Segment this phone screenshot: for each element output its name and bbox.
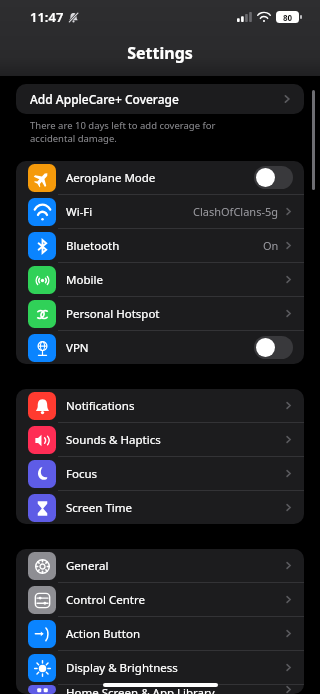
button[interactable]: Action Button [16,617,304,650]
staticText: 11:47 [30,8,64,26]
button[interactable]: Notifications [16,389,304,422]
button[interactable]: Add AppleCare+ Coverage [16,84,304,114]
button[interactable]: Sounds & Haptics [16,423,304,456]
staticText: Add AppleCare+ Coverage [30,91,179,107]
button[interactable]: Personal Hotspot [16,297,304,330]
staticText: Control Centre [66,592,145,608]
button[interactable]: Bluetooth [16,229,304,262]
staticText: General [66,558,109,574]
staticText: Bluetooth [66,238,120,254]
staticText: Action Button [66,626,140,642]
staticText: There are 10 days left to add coverage f… [30,119,216,145]
staticText: Wi-Fi [66,204,93,220]
staticText: 80 [283,12,293,23]
button[interactable]: Toggle, off [254,336,293,359]
button[interactable]: Control Centre [16,583,304,616]
button[interactable]: Home Screen & App Library [16,685,304,694]
button[interactable]: General [16,549,304,582]
staticText: Screen Time [66,500,133,516]
button[interactable]: Focus [16,457,304,490]
staticText: Personal Hotspot [66,306,160,322]
staticText: Aeroplane Mode [66,170,156,186]
staticText: Notifications [66,398,135,414]
button[interactable]: Toggle, off [254,166,293,189]
button[interactable]: VPN [16,331,304,364]
staticText: Sounds & Haptics [66,432,161,448]
button[interactable]: Aeroplane Mode [16,161,304,194]
staticText: Mobile [66,272,103,288]
staticText: VPN [66,340,89,356]
staticText: Home Screen & App Library [66,685,215,694]
staticText: On [263,238,279,253]
staticText: Display & Brightness [66,660,178,676]
button[interactable]: Wi-Fi [16,195,304,228]
button[interactable]: Screen Time [16,491,304,524]
staticText: ClashOfClans-5g [193,204,279,219]
staticText: Settings [127,42,193,64]
staticText: Focus [66,466,98,482]
button[interactable]: Mobile [16,263,304,296]
button[interactable]: Display & Brightness [16,651,304,684]
